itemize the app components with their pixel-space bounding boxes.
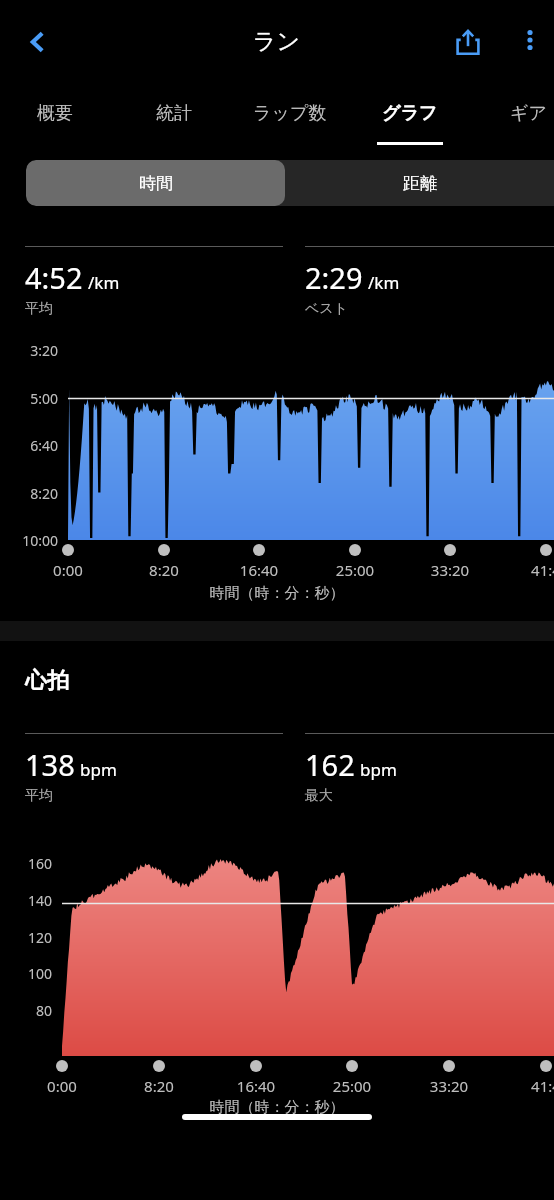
staticText: 6:40 <box>0 436 58 455</box>
button[interactable]: 時間 <box>26 160 285 206</box>
staticText: 最大 <box>305 787 333 805</box>
staticText: 160 <box>0 854 52 873</box>
staticText: ラン <box>253 27 301 56</box>
staticText: ラップ数 <box>253 102 327 125</box>
staticText: 時間（時：分：秒） <box>0 584 554 603</box>
staticText: 25:00 <box>312 1076 392 1096</box>
staticText: ベスト <box>305 300 348 318</box>
staticText: 概要 <box>37 102 73 125</box>
staticText: 25:00 <box>315 560 395 580</box>
staticText: 統計 <box>156 102 192 125</box>
staticText: 心拍 <box>25 667 69 695</box>
button[interactable]: ラップ数 <box>232 84 348 160</box>
button[interactable]: More options <box>508 18 552 62</box>
button[interactable]: グラフ <box>352 84 468 160</box>
staticText: bpm <box>360 758 397 781</box>
staticText: 16:40 <box>216 1076 296 1096</box>
button[interactable]: Back <box>14 18 62 66</box>
button[interactable]: ギア <box>470 84 554 160</box>
button[interactable]: Share <box>444 18 492 66</box>
staticText: 138 <box>25 745 75 784</box>
staticText: 33:20 <box>409 1076 489 1096</box>
staticText: 8:20 <box>124 560 204 580</box>
staticText: /km <box>88 271 120 294</box>
staticText: 100 <box>0 964 52 983</box>
staticText: 16:40 <box>219 560 299 580</box>
staticText: 8:20 <box>119 1076 199 1096</box>
staticText: グラフ <box>382 102 438 125</box>
staticText: 0:00 <box>28 560 108 580</box>
button[interactable]: 概要 <box>0 84 113 160</box>
staticText: 41:4 <box>506 1076 554 1096</box>
staticText: /km <box>368 271 400 294</box>
staticText: 3:20 <box>0 341 58 360</box>
staticText: 平均 <box>25 300 53 318</box>
staticText: 0:00 <box>22 1076 102 1096</box>
staticText: 41:4 <box>506 560 554 580</box>
staticText: bpm <box>80 758 117 781</box>
staticText: 8:20 <box>0 484 58 503</box>
staticText: 時間 <box>139 173 173 194</box>
staticText: 4:52 <box>25 258 83 297</box>
staticText: 距離 <box>403 173 437 194</box>
staticText: 140 <box>0 891 52 910</box>
button[interactable]: 距離 <box>285 160 554 206</box>
staticText: 5:00 <box>0 389 58 408</box>
staticText: 120 <box>0 928 52 947</box>
staticText: ギア <box>510 102 547 125</box>
staticText: 2:29 <box>305 258 363 297</box>
staticText: 平均 <box>25 787 53 805</box>
staticText: 80 <box>0 1001 52 1020</box>
staticText: 33:20 <box>410 560 490 580</box>
button[interactable]: 統計 <box>116 84 232 160</box>
staticText: 162 <box>305 745 355 784</box>
staticText: 10:00 <box>0 531 58 550</box>
staticText: 時間（時：分：秒） <box>0 1098 554 1117</box>
